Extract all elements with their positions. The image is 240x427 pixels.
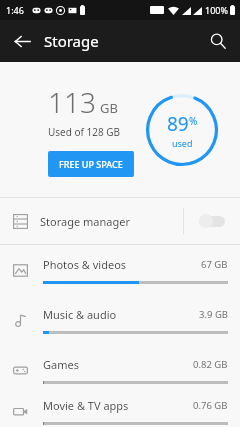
button[interactable]: Storage manager xyxy=(0,198,240,244)
staticText: Music & audio xyxy=(43,307,199,322)
button[interactable]: Back xyxy=(6,25,38,57)
button[interactable]: Games xyxy=(0,345,240,395)
staticText: Used of 128 GB xyxy=(48,125,121,139)
staticText: 113 xyxy=(48,83,96,121)
staticText: Games xyxy=(43,357,193,372)
staticText: GB xyxy=(100,99,118,117)
staticText: Movie & TV apps xyxy=(43,398,193,413)
staticText: 0.82 GB xyxy=(193,358,228,371)
staticText: 89 xyxy=(167,111,189,137)
button[interactable]: FREE UP SPACE xyxy=(48,151,134,177)
staticText: % xyxy=(189,114,198,128)
staticText: 0.76 GB xyxy=(193,399,228,412)
staticText: 3.9 GB xyxy=(199,308,228,321)
staticText: 67 GB xyxy=(201,258,228,271)
button[interactable]: Search xyxy=(202,25,234,57)
staticText: Photos & videos xyxy=(43,257,201,272)
button[interactable]: Music & audio xyxy=(0,295,240,345)
staticText: FREE UP SPACE xyxy=(59,158,123,170)
staticText: Storage xyxy=(44,31,99,51)
staticText: used xyxy=(172,137,193,149)
staticText: 100% xyxy=(205,4,228,16)
staticText: Storage manager xyxy=(40,214,183,229)
button[interactable]: Movie & TV apps xyxy=(0,395,240,427)
staticText: 1:46 xyxy=(6,4,24,16)
button[interactable]: Photos & videos xyxy=(0,245,240,295)
button[interactable]: Storage manager toggle xyxy=(184,198,240,244)
